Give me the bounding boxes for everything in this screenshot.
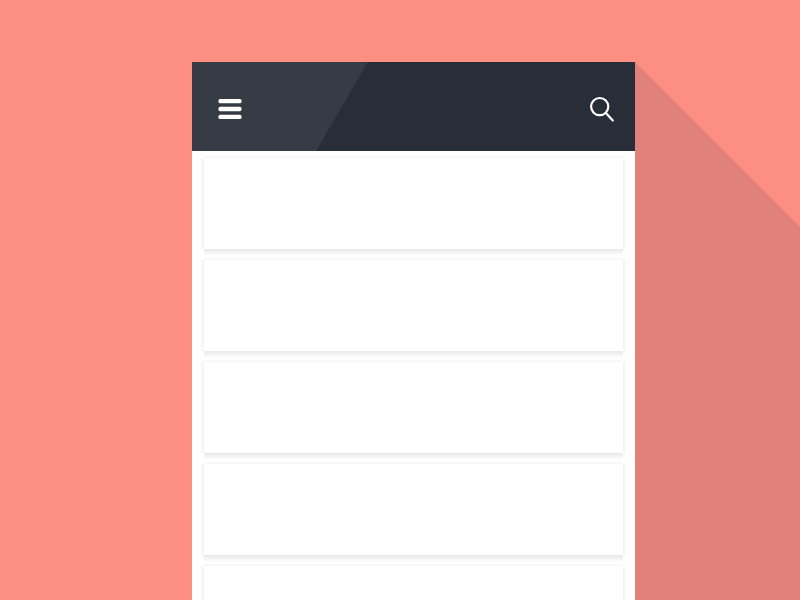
button[interactable]: Search <box>581 87 621 127</box>
button[interactable]: Menu <box>210 89 250 129</box>
